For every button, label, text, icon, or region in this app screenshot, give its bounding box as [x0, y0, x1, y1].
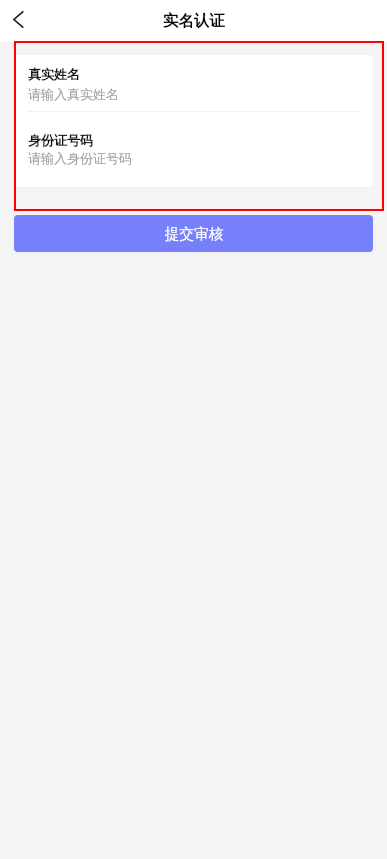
button[interactable]: 身份证号码	[14, 112, 373, 166]
staticText: 请输入身份证号码	[28, 150, 132, 166]
button[interactable]: Back	[0, 0, 36, 40]
staticText: 请输入真实姓名	[28, 86, 119, 102]
button[interactable]: 真实姓名	[14, 55, 373, 111]
staticText: 实名认证	[163, 11, 225, 31]
staticText: 真实姓名	[28, 66, 80, 82]
staticText: 提交审核	[164, 225, 224, 244]
staticText: 身份证号码	[28, 132, 93, 148]
button[interactable]: 提交审核	[14, 215, 373, 252]
